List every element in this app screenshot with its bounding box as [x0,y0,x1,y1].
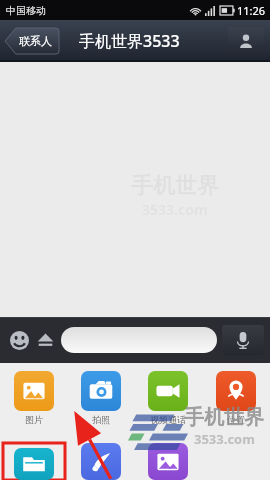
button[interactable]: Voice message [222,325,264,355]
staticText: 位置 [227,414,245,425]
staticText: 联系人 [19,34,52,48]
staticText: 视频通话 [150,414,186,425]
button[interactable]: Emoji [6,327,32,353]
staticText: 中国移动 [6,4,46,17]
button[interactable] [61,327,217,353]
button[interactable]: 位置 [216,371,256,425]
button[interactable]: Contact profile [228,27,264,55]
staticText: 3533.com [142,200,208,219]
staticText: 手机世界 [184,405,264,430]
button[interactable]: 闪照 [148,443,188,480]
button[interactable]: 拍照 [81,371,121,425]
staticText: 3533.com [194,430,255,448]
staticText: 手机世界3533 [79,30,180,52]
button[interactable]: 白板 [81,443,121,480]
staticText: 11:26 [237,3,266,18]
button[interactable]: 联系人 [5,28,59,54]
button[interactable]: 视频通话 [148,371,188,425]
button[interactable]: More [32,327,58,353]
button[interactable]: 图片 [14,371,54,425]
button[interactable]: 文件 [14,448,54,480]
staticText: 手机世界 [131,172,219,200]
staticText: 图片 [25,414,43,425]
staticText: 拍照 [92,414,110,425]
